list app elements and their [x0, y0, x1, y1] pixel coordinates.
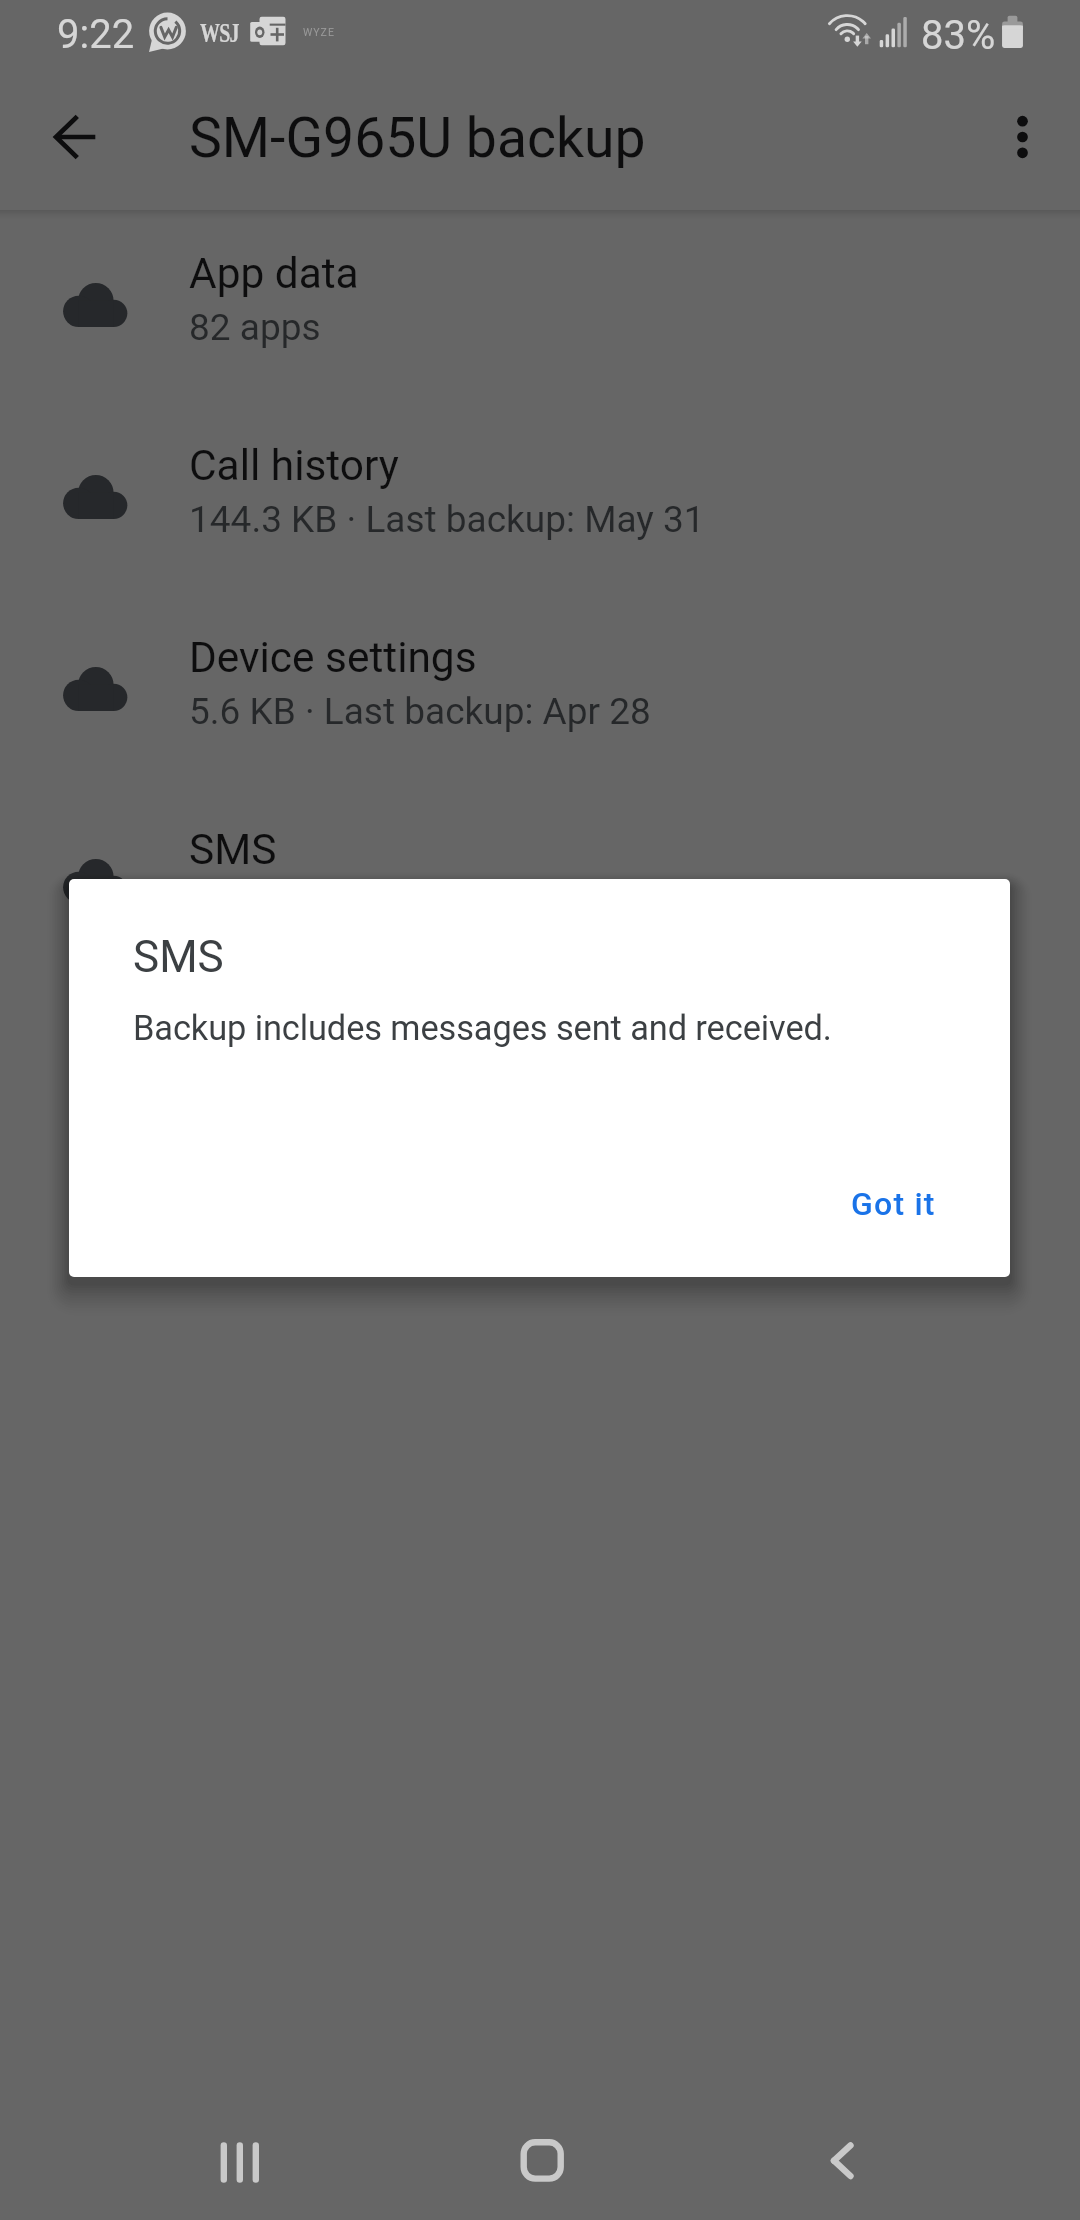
staticText: SMS [133, 931, 224, 983]
button[interactable]: App data [0, 211, 1080, 403]
staticText: 83% [921, 12, 996, 59]
button[interactable]: Home [480, 2102, 602, 2218]
staticText: SM-G965U backup [189, 106, 646, 171]
staticText: Backup includes messages sent and receiv… [133, 1008, 832, 1048]
staticText: 9:22 [57, 11, 135, 58]
staticText: App data [189, 249, 359, 299]
button[interactable]: More options [980, 78, 1080, 196]
staticText: WYZE [303, 26, 335, 38]
button[interactable]: Recent apps [182, 2104, 304, 2220]
staticText: 82 apps [189, 306, 321, 349]
staticText: WSJ [200, 18, 239, 48]
button[interactable]: SMS [0, 787, 1080, 979]
staticText: 5.6 KB · Last backup: Apr 28 [189, 690, 651, 733]
button[interactable]: Call history [0, 403, 1080, 595]
staticText: Got it [851, 1185, 936, 1223]
staticText: 144.3 KB · Last backup: May 31 [189, 498, 705, 541]
staticText: SMS [189, 825, 277, 875]
staticText: Call history [189, 441, 399, 491]
staticText: Device settings [189, 633, 477, 683]
button[interactable]: Got it [811, 1162, 975, 1246]
button[interactable]: Navigate up [32, 78, 140, 196]
button[interactable]: Device settings [0, 595, 1080, 787]
button[interactable]: Back [781, 2102, 903, 2218]
